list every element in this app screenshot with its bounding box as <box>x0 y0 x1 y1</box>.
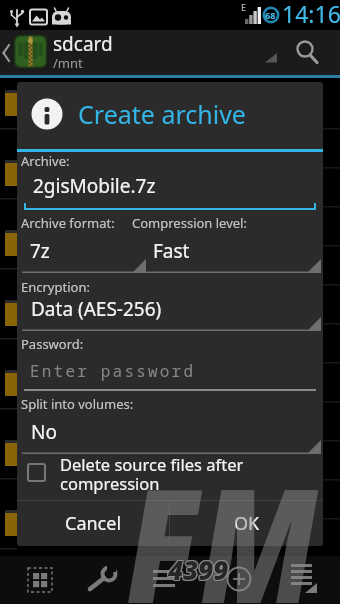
staticText: Password: <box>21 335 84 353</box>
staticText: Delete source files after compression <box>60 453 244 495</box>
button[interactable]: No <box>22 417 321 454</box>
button[interactable] <box>0 556 68 604</box>
button[interactable]: Data (AES-256) <box>22 294 321 331</box>
staticText: 4399 <box>168 551 229 586</box>
button[interactable] <box>204 556 272 604</box>
staticText: Fast <box>153 238 190 264</box>
button[interactable]: Fast <box>146 236 321 273</box>
button[interactable] <box>23 350 317 392</box>
staticText: 4399 <box>167 553 228 588</box>
staticText: No <box>31 419 57 445</box>
staticText: 4399 <box>169 551 230 586</box>
staticText: OK <box>234 511 260 536</box>
staticText: Compression level: <box>132 214 247 232</box>
button[interactable]: 7z <box>22 236 146 273</box>
staticText: /mnt <box>53 54 83 72</box>
staticText: 4399 <box>169 552 230 587</box>
staticText: FM <box>126 434 318 604</box>
button[interactable] <box>272 556 340 604</box>
button[interactable]: Delete source files after compression <box>23 453 317 495</box>
staticText: sdcard <box>53 31 113 57</box>
staticText: 14:16 <box>282 0 340 28</box>
staticText: 2gisMobile.7z <box>33 173 156 199</box>
staticText: 4399 <box>167 551 228 586</box>
button[interactable]: OK <box>170 501 323 546</box>
button[interactable]: Cancel <box>17 501 169 546</box>
staticText: 68 <box>265 9 276 21</box>
staticText: 4399 <box>168 553 229 588</box>
staticText: Archive: <box>21 152 70 170</box>
staticText: 4399 <box>167 552 228 587</box>
button[interactable] <box>23 168 317 210</box>
staticText: Split into volumes: <box>21 395 134 413</box>
staticText: Archive format: <box>21 214 115 232</box>
button[interactable] <box>136 556 204 604</box>
staticText: 4399 <box>168 552 229 587</box>
button[interactable] <box>288 34 328 74</box>
staticText: E <box>241 1 247 13</box>
staticText: 7z <box>30 238 50 264</box>
staticText: Create archive <box>78 97 246 131</box>
staticText: 4399 <box>169 553 230 588</box>
staticText: Encryption: <box>21 278 90 296</box>
staticText: Cancel <box>65 511 122 536</box>
button[interactable] <box>68 556 136 604</box>
staticText: Enter password <box>30 360 196 382</box>
staticText: Data (AES-256) <box>31 296 162 322</box>
